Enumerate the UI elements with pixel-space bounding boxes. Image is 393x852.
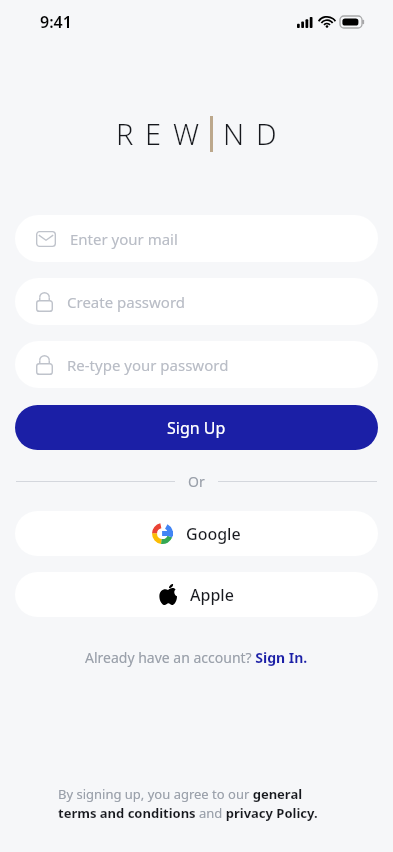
staticText: R [116, 114, 134, 153]
staticText: Apple [190, 584, 234, 606]
staticText: Or [188, 472, 205, 491]
staticText: Re-type your password [67, 355, 229, 375]
staticText: Sign Up [167, 417, 226, 439]
button[interactable]: Already have an account? Sign In. [77, 644, 316, 671]
button[interactable]: Create password [15, 278, 378, 325]
staticText: By signing up, you agree to our general … [58, 785, 335, 822]
staticText: Enter your mail [70, 229, 178, 249]
staticText: W [173, 114, 200, 153]
button[interactable]: Apple [15, 572, 378, 617]
staticText: 9:41 [40, 11, 72, 33]
staticText: Google [186, 523, 241, 545]
button[interactable]: Enter your mail [15, 215, 378, 262]
button[interactable]: Google [15, 511, 378, 556]
staticText: Create password [67, 292, 186, 312]
staticText: D [256, 114, 277, 153]
button[interactable]: Re-type your password [15, 341, 378, 388]
staticText: N [223, 114, 245, 153]
staticText: E [145, 114, 162, 153]
staticText: Already have an account? Sign In. [85, 648, 308, 667]
button[interactable]: Sign Up [15, 405, 378, 450]
